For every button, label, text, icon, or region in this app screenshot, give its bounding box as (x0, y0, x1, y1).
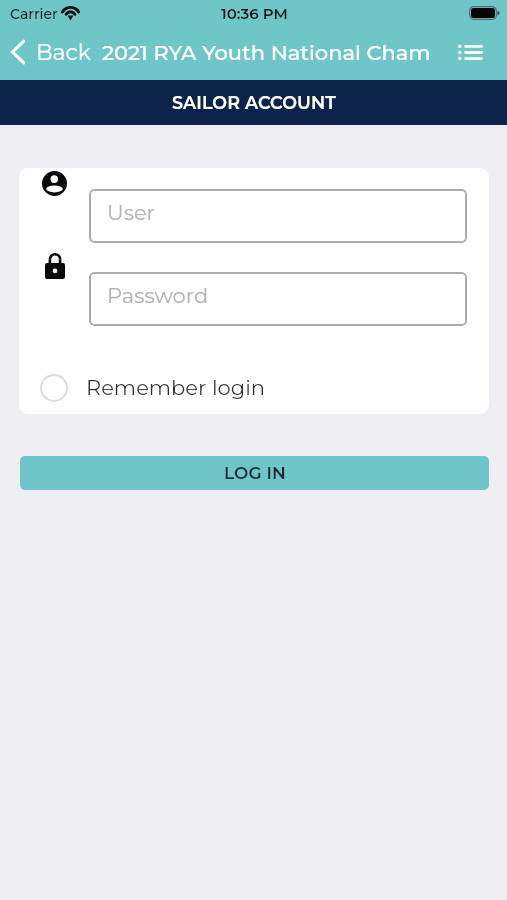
staticText: LOG IN (224, 463, 286, 484)
staticText: Back (36, 39, 91, 66)
staticText: Remember login (86, 375, 266, 401)
button[interactable]: Menu (452, 34, 489, 70)
button[interactable]: Password (89, 272, 467, 326)
button[interactable]: User (89, 189, 467, 243)
staticText: 10:36 PM (221, 4, 288, 22)
button[interactable]: LOG IN (20, 456, 489, 490)
staticText: User (107, 200, 155, 226)
button[interactable]: Back (4, 32, 96, 80)
staticText: Password (107, 283, 209, 309)
staticText: 2021 RYA Youth National Cham (102, 40, 431, 66)
staticText: Carrier (10, 5, 58, 22)
button[interactable]: Remember login (19, 366, 489, 410)
staticText: SAILOR ACCOUNT (172, 92, 336, 113)
